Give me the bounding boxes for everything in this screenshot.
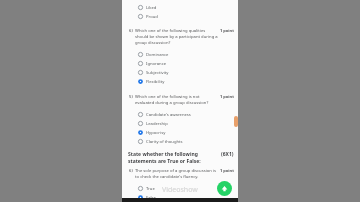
button[interactable]: Liked xyxy=(122,3,238,12)
staticText: State whether the following statements a… xyxy=(128,151,217,164)
button[interactable]: Flexibility xyxy=(122,77,238,86)
staticText: The sole purpose of a group discussion i… xyxy=(135,168,218,180)
button[interactable]: Subjectivity xyxy=(122,68,238,77)
staticText: Hypocrisy xyxy=(146,130,166,136)
staticText: Liked xyxy=(146,5,157,11)
staticText: False xyxy=(146,195,156,201)
button[interactable]: Share on WhatsApp xyxy=(217,181,232,196)
staticText: (6X1) xyxy=(221,151,234,158)
button[interactable]: Hypocrisy xyxy=(122,128,238,137)
button[interactable]: Leadership xyxy=(122,119,238,128)
button[interactable]: Ignorance xyxy=(122,59,238,68)
staticText: Which one of the following qualities sho… xyxy=(135,28,218,46)
staticText: True xyxy=(146,186,155,192)
staticText: Dominance xyxy=(146,52,169,58)
staticText: Subjectivity xyxy=(146,70,169,76)
staticText: Videoshow xyxy=(162,185,198,195)
staticText: Candidate's awareness xyxy=(146,112,191,118)
staticText: Leadership xyxy=(146,121,168,127)
staticText: 5) xyxy=(129,94,133,100)
staticText: 1 point xyxy=(220,168,234,173)
button[interactable]: False xyxy=(122,193,238,202)
button[interactable]: True xyxy=(122,184,238,193)
staticText: 6) xyxy=(129,28,133,34)
staticText: 1 point xyxy=(220,94,234,99)
button[interactable]: Proud xyxy=(122,12,238,21)
button[interactable]: Dominance xyxy=(122,50,238,59)
staticText: Ignorance xyxy=(146,61,167,67)
staticText: 6) xyxy=(129,168,133,174)
button[interactable]: Clarity of thoughts xyxy=(122,137,238,146)
staticText: Which one of the following is not evalua… xyxy=(135,94,218,106)
staticText: Clarity of thoughts xyxy=(146,139,183,145)
staticText: 1 point xyxy=(220,28,234,33)
button[interactable]: Candidate's awareness xyxy=(122,110,238,119)
staticText: Proud xyxy=(146,14,158,20)
staticText: Flexibility xyxy=(146,79,165,85)
